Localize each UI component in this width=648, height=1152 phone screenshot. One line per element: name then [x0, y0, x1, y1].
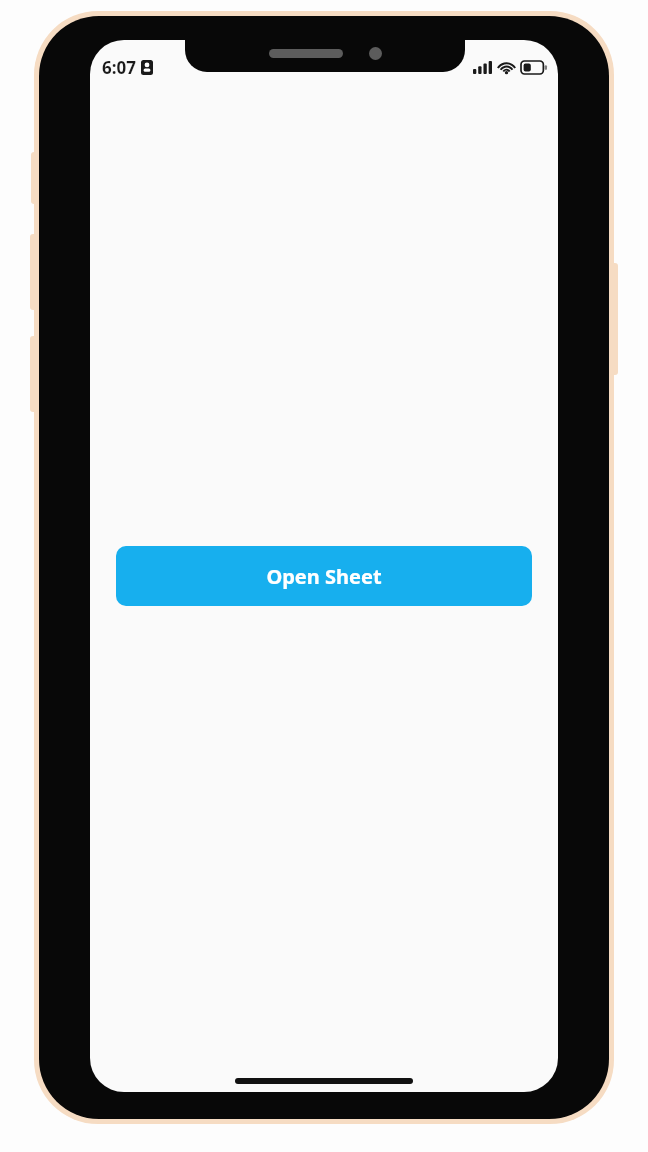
button[interactable]: Open Sheet: [116, 546, 532, 606]
other: Volume up: [30, 234, 39, 310]
staticText: 6:07: [102, 56, 136, 79]
other: Silence switch: [31, 152, 39, 204]
staticText: Open Sheet: [266, 563, 382, 590]
other: Volume down: [30, 336, 39, 412]
